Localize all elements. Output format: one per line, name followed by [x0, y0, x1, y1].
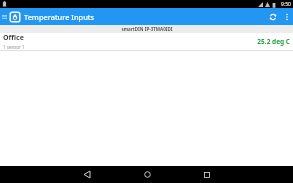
- button[interactable]: Office: [0, 33, 293, 50]
- button[interactable]: Home: [117, 166, 177, 183]
- button[interactable]: More options: [281, 8, 293, 25]
- staticText: 1 sensor 1: [3, 44, 25, 50]
- button[interactable]: Open navigation drawer: [0, 8, 8, 25]
- staticText: smartDIN IP-3TMA0IDI: [121, 26, 173, 32]
- staticText: Office: [3, 33, 24, 43]
- staticText: Temperature Inputs: [24, 12, 95, 22]
- button[interactable]: Refresh: [264, 8, 281, 25]
- button[interactable]: Back: [57, 166, 117, 183]
- button[interactable]: Recent apps: [177, 166, 237, 183]
- staticText: 9:50: [281, 1, 291, 8]
- staticText: 25.2 deg C: [257, 37, 290, 46]
